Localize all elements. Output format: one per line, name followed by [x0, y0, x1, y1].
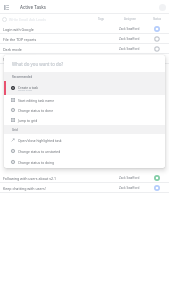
- staticText: Status: [153, 17, 162, 21]
- button[interactable]: Following with users about v2.1: [0, 173, 169, 183]
- staticText: Recommended: [12, 75, 33, 79]
- staticText: Create a task: [18, 85, 39, 89]
- staticText: Start editing task name: [18, 98, 55, 102]
- staticText: Grid: [12, 128, 18, 132]
- staticText: What do you want to do?: [12, 61, 64, 67]
- button[interactable]: Change status to done: [4, 105, 165, 115]
- button[interactable]: File the TOP reports: [0, 34, 169, 44]
- staticText: Zack Swafford: [119, 37, 140, 41]
- staticText: Zack Swafford: [119, 27, 140, 31]
- staticText: Change status to doing: [18, 160, 55, 164]
- button[interactable]: Menu: [2, 3, 11, 12]
- button[interactable]: Send the briefing notes: [0, 54, 169, 64]
- button[interactable]: Change status to unstarted: [4, 145, 165, 156]
- staticText: Change status to done: [18, 108, 53, 112]
- button[interactable]: Open/close highlighted task: [4, 134, 165, 145]
- staticText: Login with Google: [3, 27, 119, 32]
- button[interactable]: Dark mode: [0, 44, 169, 54]
- staticText: Create a task: [18, 89, 32, 92]
- button[interactable]: Login with Google: [0, 24, 169, 34]
- staticText: Dark mode: [3, 47, 119, 52]
- staticText: Send the briefing notes: [3, 57, 119, 62]
- staticText: Open/close highlighted task: [18, 138, 62, 142]
- staticText: Change status to unstarted: [18, 149, 61, 153]
- staticText: Zack Swafford: [119, 47, 140, 51]
- staticText: Following with users about v2.1: [3, 176, 119, 181]
- staticText: Jump to grid: [18, 118, 38, 122]
- button[interactable]: Keep chatting with users!: [0, 183, 169, 193]
- staticText: Zack Swafford: [119, 176, 140, 180]
- staticText: Tags: [98, 17, 104, 21]
- button[interactable]: Profile: [159, 4, 166, 11]
- button[interactable]: Create a task: [4, 81, 165, 95]
- button[interactable]: Jump to grid: [4, 115, 165, 125]
- staticText: Write Email Ask Leads: [9, 17, 46, 22]
- staticText: File the TOP reports: [3, 37, 119, 42]
- staticText: Zack Swafford: [119, 186, 140, 190]
- staticText: Keep chatting with users!: [3, 186, 119, 191]
- button[interactable]: Start editing task name: [4, 95, 165, 105]
- staticText: Assignee: [124, 17, 136, 21]
- button[interactable]: Change status to doing: [4, 156, 165, 167]
- staticText: Active Tasks: [20, 4, 46, 10]
